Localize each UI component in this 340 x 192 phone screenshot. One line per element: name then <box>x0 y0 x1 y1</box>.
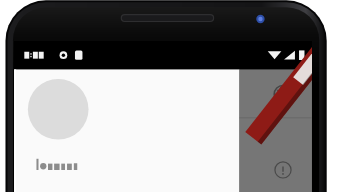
button[interactable] <box>16 69 240 192</box>
button[interactable]: Language <box>240 69 312 112</box>
button[interactable]: Info <box>240 112 312 192</box>
